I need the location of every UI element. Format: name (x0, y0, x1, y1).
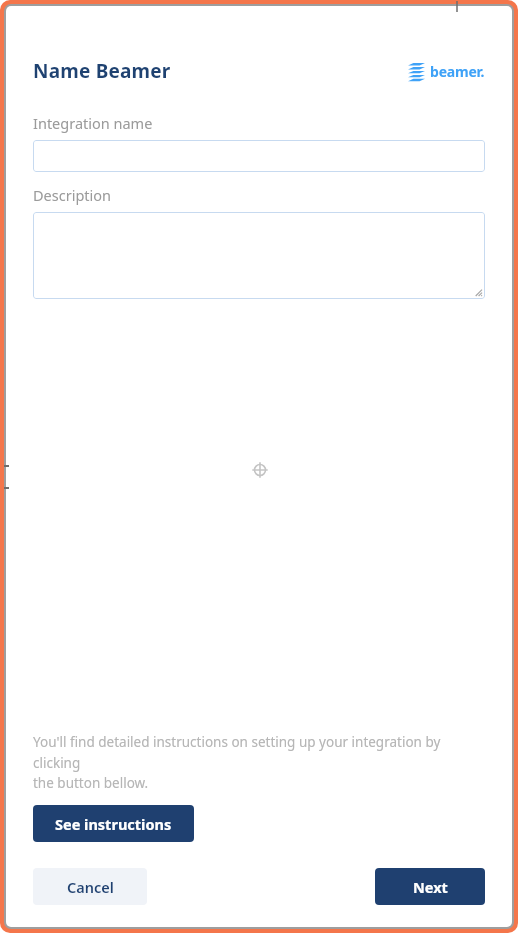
button[interactable]: Cancel (33, 868, 147, 905)
staticText: beamer. (430, 62, 485, 81)
staticText: Integration name (33, 113, 153, 133)
other: Beamer logo (408, 63, 425, 81)
staticText: Next (413, 877, 448, 897)
other: Loading placeholder (252, 462, 268, 478)
button[interactable] (33, 140, 485, 172)
button[interactable]: See instructions (33, 805, 194, 842)
staticText: See instructions (55, 814, 172, 834)
staticText: Description (33, 185, 112, 205)
button[interactable]: Next (375, 868, 485, 905)
button[interactable] (33, 212, 485, 299)
staticText: Name Beamer (33, 58, 171, 84)
staticText: You'll find detailed instructions on set… (33, 733, 485, 792)
staticText: Cancel (67, 877, 114, 897)
